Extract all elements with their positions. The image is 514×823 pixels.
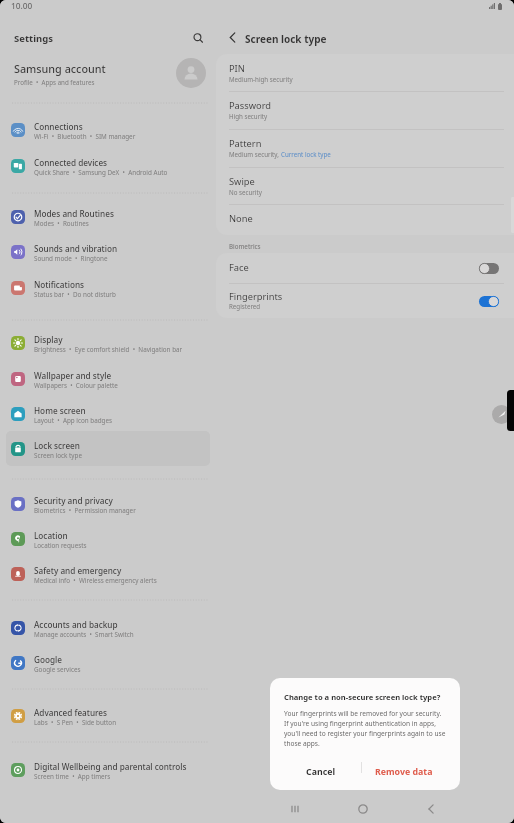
button[interactable]: On <box>479 296 499 307</box>
staticText: Medical info • Wireless emergency alerts <box>34 576 157 585</box>
staticText: High security <box>229 112 268 120</box>
button[interactable]: Home <box>346 794 380 823</box>
button[interactable]: Home screen <box>6 396 210 431</box>
staticText: Location requests <box>34 541 87 550</box>
button[interactable]: Face <box>216 253 514 283</box>
staticText: Google <box>34 654 62 665</box>
button[interactable]: None <box>216 204 514 234</box>
staticText: Connected devices <box>34 157 108 168</box>
staticText: Pattern <box>229 137 262 150</box>
staticText: Display <box>34 334 63 345</box>
staticText: Screen time • App timers <box>34 772 111 781</box>
button[interactable]: Modes and Routines <box>6 199 210 234</box>
staticText: Change to a non-secure screen lock type? <box>284 692 441 702</box>
staticText: Google services <box>34 665 81 674</box>
button[interactable]: Recents <box>278 794 312 823</box>
staticText: Swipe <box>229 175 255 188</box>
button[interactable]: Google <box>6 645 210 680</box>
staticText: Wi-Fi • Bluetooth • SIM manager <box>34 132 136 141</box>
staticText: Medium-high security <box>229 75 293 83</box>
staticText: Cancel <box>306 766 336 778</box>
button[interactable]: Notifications <box>6 270 210 305</box>
staticText: Brightness • Eye comfort shield • Naviga… <box>34 345 183 354</box>
button[interactable]: Off <box>479 263 499 274</box>
staticText: Labs • S Pen • Side button <box>34 718 117 727</box>
button[interactable]: Security and privacy <box>6 486 210 521</box>
staticText: Profile • Apps and features <box>14 78 95 86</box>
button[interactable]: Edge panel <box>492 405 511 424</box>
button[interactable]: Accounts and backup <box>6 610 210 645</box>
staticText: Samsung account <box>14 61 106 76</box>
button[interactable]: Display <box>6 325 210 360</box>
staticText: Home screen <box>34 405 86 416</box>
button[interactable]: Samsung account <box>0 54 218 92</box>
staticText: Status bar • Do not disturb <box>34 290 116 299</box>
staticText: Screen lock type <box>245 32 327 46</box>
staticText: 10.00 <box>11 0 33 11</box>
button[interactable]: Remove data <box>362 754 446 790</box>
staticText: None <box>229 212 253 225</box>
button[interactable]: Back <box>414 794 448 823</box>
staticText: Sound mode • Ringtone <box>34 254 108 263</box>
staticText: Safety and emergency <box>34 565 122 576</box>
button[interactable]: Safety and emergency <box>6 556 210 591</box>
staticText: Password <box>229 99 272 112</box>
staticText: Face <box>229 261 249 274</box>
staticText: Remove data <box>375 766 433 778</box>
staticText: Digital Wellbeing and parental controls <box>34 761 187 772</box>
button[interactable]: Advanced features <box>6 698 210 733</box>
staticText: Quick Share • Samsung DeX • Android Auto <box>34 168 168 177</box>
button[interactable]: Search <box>186 26 210 50</box>
staticText: Settings <box>14 32 53 45</box>
staticText: Notifications <box>34 279 84 290</box>
button[interactable]: PIN <box>216 54 514 91</box>
button[interactable]: Connections <box>6 112 210 147</box>
staticText: Security and privacy <box>34 495 113 506</box>
button[interactable]: Fingerprints <box>216 283 514 318</box>
staticText: Modes and Routines <box>34 208 114 219</box>
staticText: Connections <box>34 121 83 132</box>
button[interactable]: Cancel <box>279 754 363 790</box>
button[interactable]: Sounds and vibration <box>6 234 210 269</box>
button[interactable]: Password <box>216 91 514 129</box>
staticText: Current lock type <box>281 150 331 158</box>
staticText: Manage accounts • Smart Switch <box>34 630 134 639</box>
button[interactable]: Back <box>220 25 245 50</box>
staticText: Wallpaper and style <box>34 370 112 381</box>
button[interactable]: Lock screen <box>6 431 210 466</box>
staticText: Your fingerprints will be removed for yo… <box>284 709 446 748</box>
button[interactable]: Wallpaper and style <box>6 361 210 396</box>
staticText: Modes • Routines <box>34 219 89 228</box>
button[interactable]: Swipe <box>216 167 514 205</box>
staticText: Lock screen <box>34 440 80 451</box>
button[interactable]: Digital Wellbeing and parental controls <box>6 752 210 787</box>
staticText: Layout • App icon badges <box>34 416 113 425</box>
staticText: Biometrics • Permission manager <box>34 506 136 515</box>
staticText: Screen lock type <box>34 451 82 460</box>
button[interactable]: Connected devices <box>6 148 210 183</box>
button[interactable]: Location <box>6 521 210 556</box>
staticText: Sounds and vibration <box>34 243 118 254</box>
staticText: PIN <box>229 62 245 75</box>
staticText: Medium security, <box>229 150 281 158</box>
staticText: Registered <box>229 302 261 310</box>
staticText: Biometrics <box>229 242 261 250</box>
staticText: Advanced features <box>34 707 108 718</box>
staticText: Location <box>34 530 68 541</box>
staticText: No security <box>229 188 262 196</box>
staticText: Fingerprints <box>229 290 283 303</box>
staticText: Accounts and backup <box>34 619 118 630</box>
button[interactable]: Pattern <box>216 129 514 167</box>
staticText: Wallpapers • Colour palette <box>34 381 118 390</box>
